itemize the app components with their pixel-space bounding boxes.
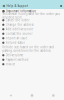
button[interactable]: More options xyxy=(60,5,62,7)
button[interactable]: Home xyxy=(21,94,43,97)
button[interactable]: Back xyxy=(2,4,5,7)
button[interactable]: Invoice xyxy=(0,62,64,66)
button[interactable]: Refund status xyxy=(0,40,64,45)
staticText: This service is only valid for the order… xyxy=(2,12,60,19)
staticText: Change the address xyxy=(6,23,34,26)
staticText: Important information xyxy=(6,9,36,13)
staticText: Report an issue xyxy=(6,36,28,40)
button[interactable]: Payment method xyxy=(0,57,64,62)
staticText: Contact the courier xyxy=(6,32,33,35)
staticText: Refund status xyxy=(6,41,25,44)
button[interactable]: Back xyxy=(0,94,21,97)
button[interactable]: Report an issue xyxy=(0,36,64,40)
button[interactable]: Recents xyxy=(43,94,64,97)
button[interactable]: Change the address xyxy=(0,22,64,27)
staticText: Add a delivery note xyxy=(6,27,34,31)
staticText: Help & Support xyxy=(6,4,28,8)
staticText: Vehicle size based on the order and park… xyxy=(2,45,54,53)
staticText: Payment method xyxy=(6,58,29,61)
button[interactable]: Delivery time xyxy=(0,53,64,57)
staticText: Delivery time xyxy=(6,53,24,57)
button[interactable]: Add a delivery note xyxy=(0,27,64,31)
button[interactable]: Cancel the order xyxy=(0,18,64,22)
button[interactable]: Contact the courier xyxy=(0,31,64,36)
staticText: Cancel the order xyxy=(6,18,30,22)
staticText: Invoice xyxy=(6,62,16,66)
